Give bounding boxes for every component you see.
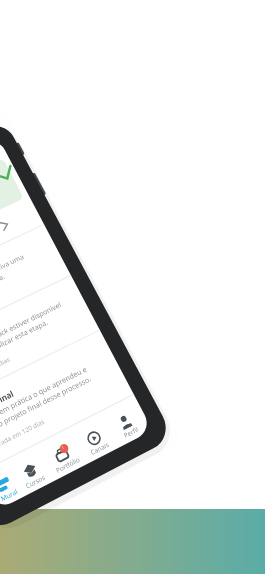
- button[interactable]: Mural: [0, 470, 30, 513]
- button[interactable]: Cursos: [11, 457, 56, 499]
- button[interactable]: Minha jornada: [0, 198, 44, 293]
- staticText: Encerrada em 120 dias: [0, 417, 47, 455]
- button[interactable]: 1: [44, 440, 88, 482]
- staticText: Coloque em prática o que aprendeu e: [0, 365, 89, 431]
- button[interactable]: Perfil: [107, 408, 151, 450]
- staticText: Aprenda novos conceitos e viva uma: [0, 252, 26, 312]
- staticText: Portfólio: [55, 455, 82, 475]
- button[interactable]: [0, 158, 24, 261]
- staticText: experiência em sala de aula.: [0, 272, 7, 321]
- staticText: realize o projeto final desse processo.: [0, 374, 94, 441]
- staticText: Encerrada em 90 dias: [0, 355, 12, 390]
- staticText: Perfil: [122, 425, 140, 440]
- staticText: Assim que o feedback estiver disponível: [0, 300, 63, 367]
- button[interactable]: Canais: [75, 424, 120, 466]
- staticText: Canais: [89, 440, 111, 457]
- staticText: 1: [60, 444, 66, 450]
- staticText: Mural: [0, 487, 19, 503]
- staticText: Projeto Final: [0, 387, 15, 421]
- staticText: você poderá visualizar esta etapa.: [0, 318, 50, 376]
- staticText: Cursos: [24, 473, 47, 491]
